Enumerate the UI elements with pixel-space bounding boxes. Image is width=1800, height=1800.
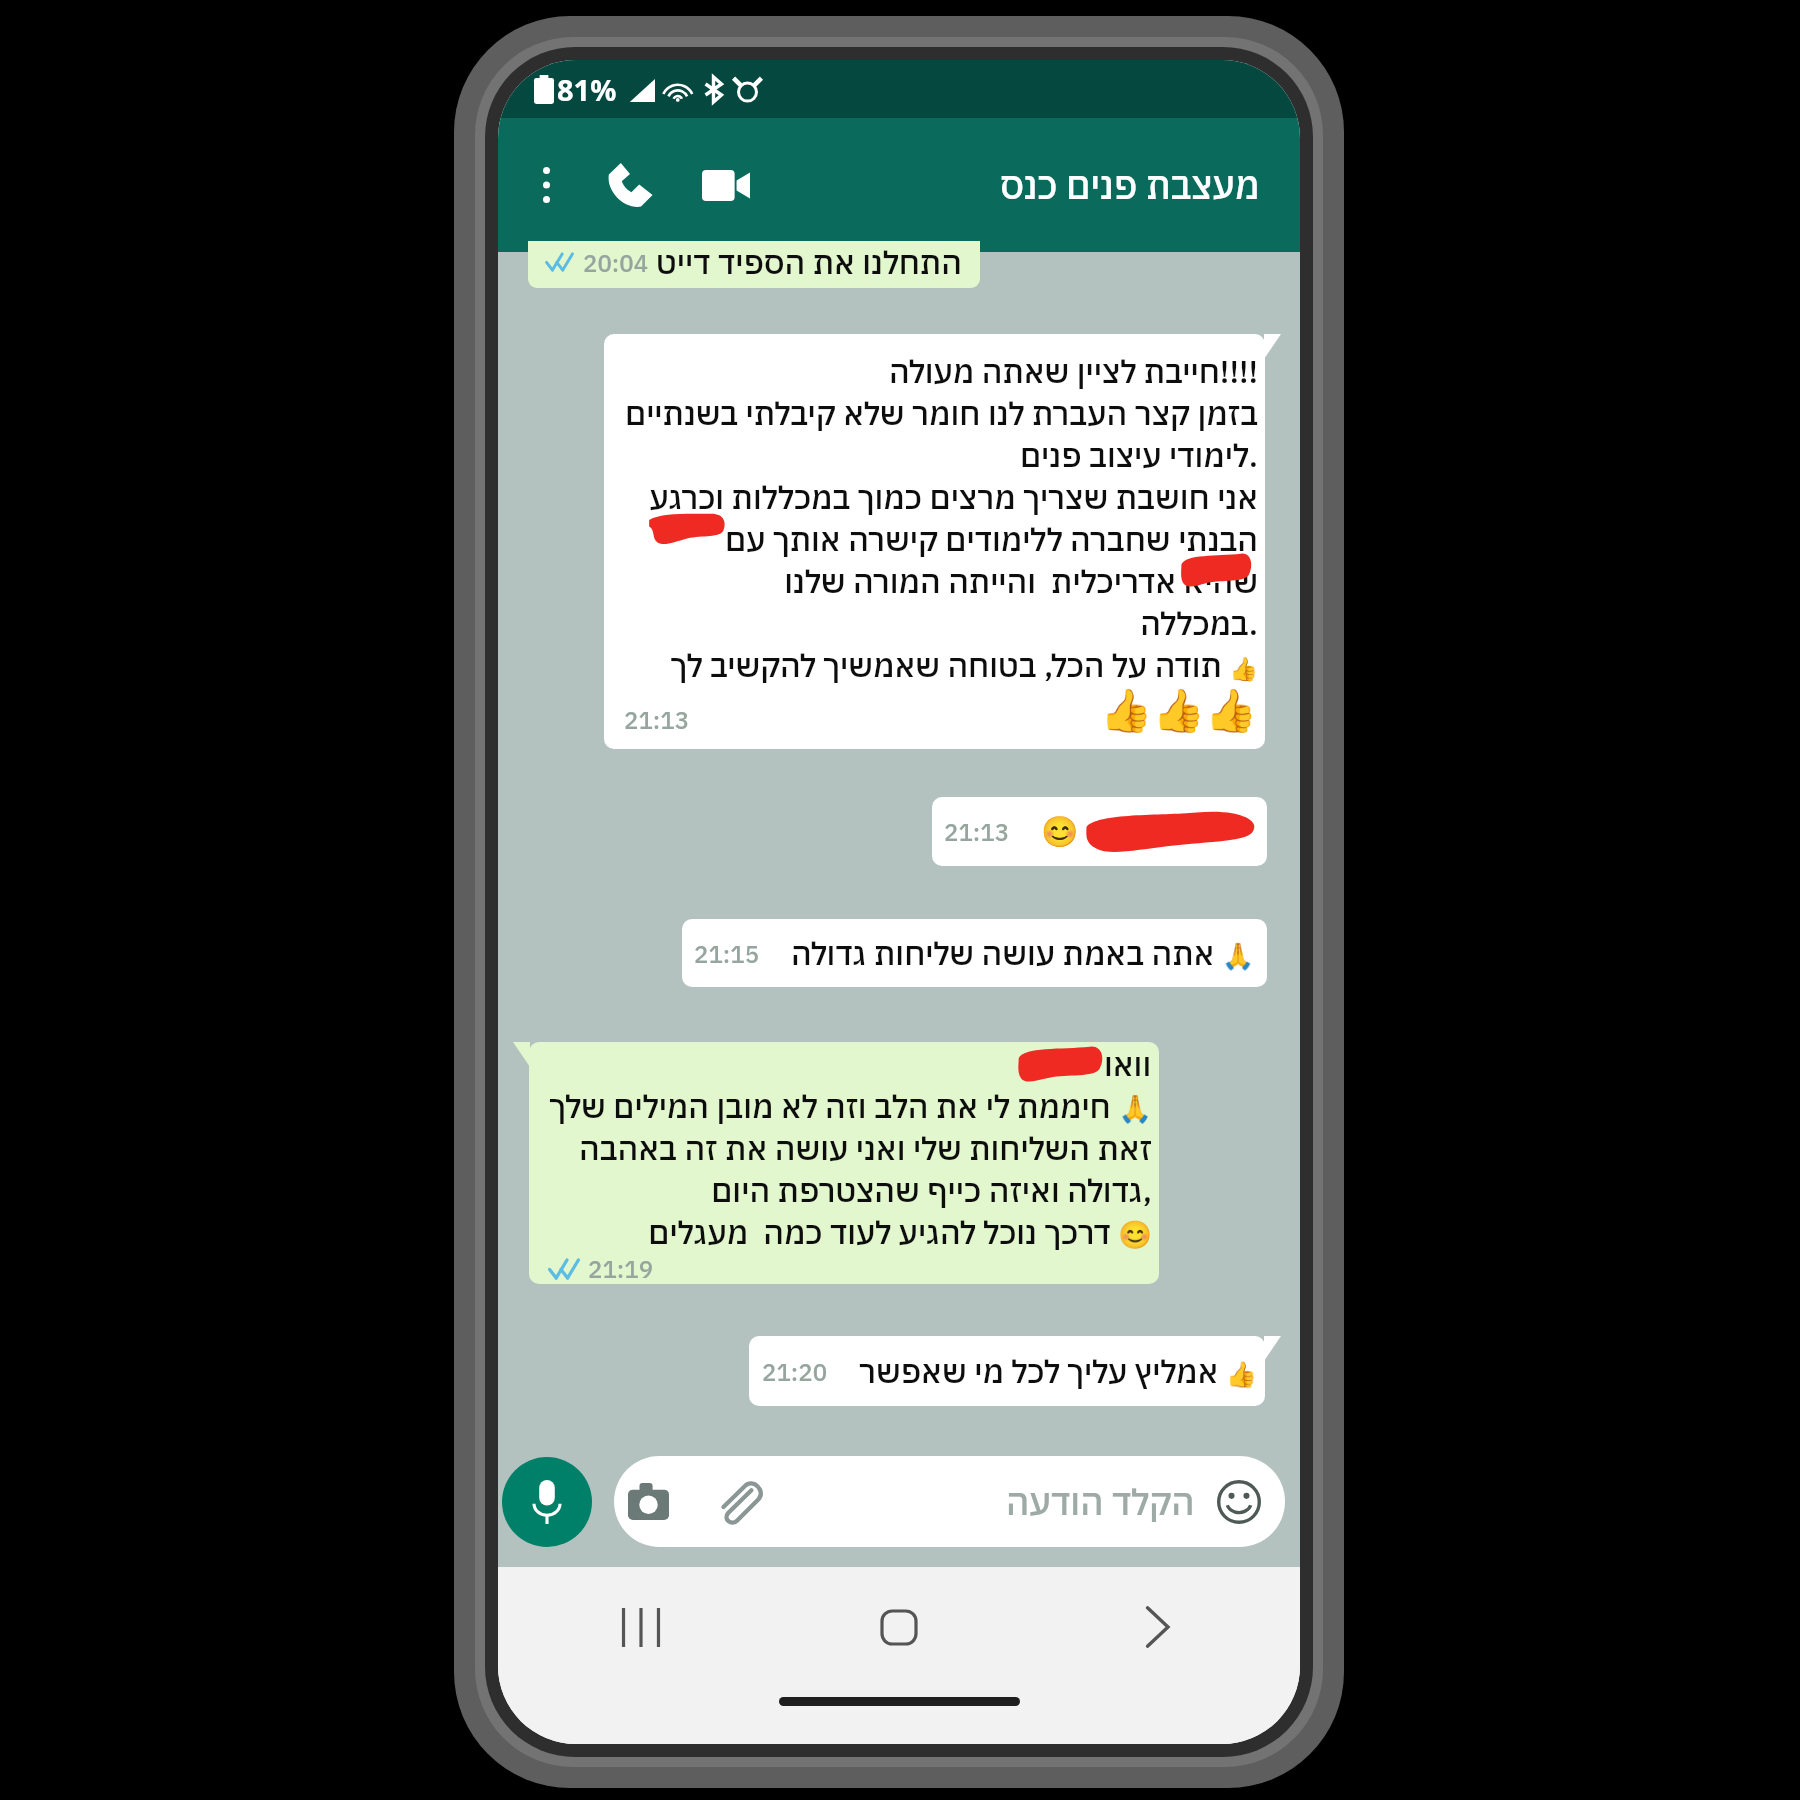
staticText: התחלנו את הספיד דייט — [656, 241, 962, 283]
button[interactable]: Back — [1115, 1585, 1199, 1669]
staticText: 20:04 — [583, 247, 649, 278]
staticText: וואו — [1104, 1043, 1152, 1085]
staticText: 21:15 — [694, 938, 760, 969]
button[interactable]: More options — [518, 157, 574, 213]
button[interactable]: Recent apps — [599, 1585, 683, 1669]
button[interactable]: הקלד הודעה — [614, 1456, 1285, 1547]
button[interactable]: Video call — [696, 155, 756, 215]
staticText: 21:13 — [944, 816, 1010, 847]
button[interactable]: Home — [857, 1585, 941, 1669]
staticText: אתה באמת עושה שליחות גדולה 🙏 — [791, 932, 1255, 974]
button[interactable]: Voice message — [502, 1457, 592, 1547]
button[interactable]: חייבת לציין שאתה מעולה!!!! בזמן קצר העבר… — [604, 334, 1265, 749]
staticText: 81% — [557, 70, 617, 109]
staticText: 😊 — [1041, 814, 1079, 849]
staticText: 21:13 — [624, 704, 690, 735]
button[interactable]: 21:15 — [682, 919, 1267, 987]
staticText: הקלד הודעה — [1006, 1478, 1195, 1525]
staticText: חיממת לי את הלב וזה לא מובן המילים שלך 🙏… — [549, 1085, 1152, 1253]
button[interactable]: 21:20 — [749, 1336, 1265, 1406]
staticText: 👍👍👍 — [1100, 686, 1258, 735]
staticText: חייבת לציין שאתה מעולה!!!! בזמן קצר העבר… — [624, 350, 1258, 686]
staticText: אמליץ עליך לכל מי שאפשר 👍 — [859, 1350, 1258, 1392]
button[interactable]: Voice call — [600, 155, 660, 215]
button[interactable]: 21:13 — [932, 797, 1267, 866]
button[interactable]: וואו — [529, 1042, 1159, 1284]
staticText: 21:20 — [762, 1356, 828, 1387]
staticText: 21:19 — [588, 1253, 654, 1284]
button[interactable]: 20:04 — [528, 241, 980, 288]
button[interactable]: מעצבת פנים כנס — [1000, 153, 1260, 217]
staticText: מעצבת פנים כנס — [1000, 161, 1260, 209]
